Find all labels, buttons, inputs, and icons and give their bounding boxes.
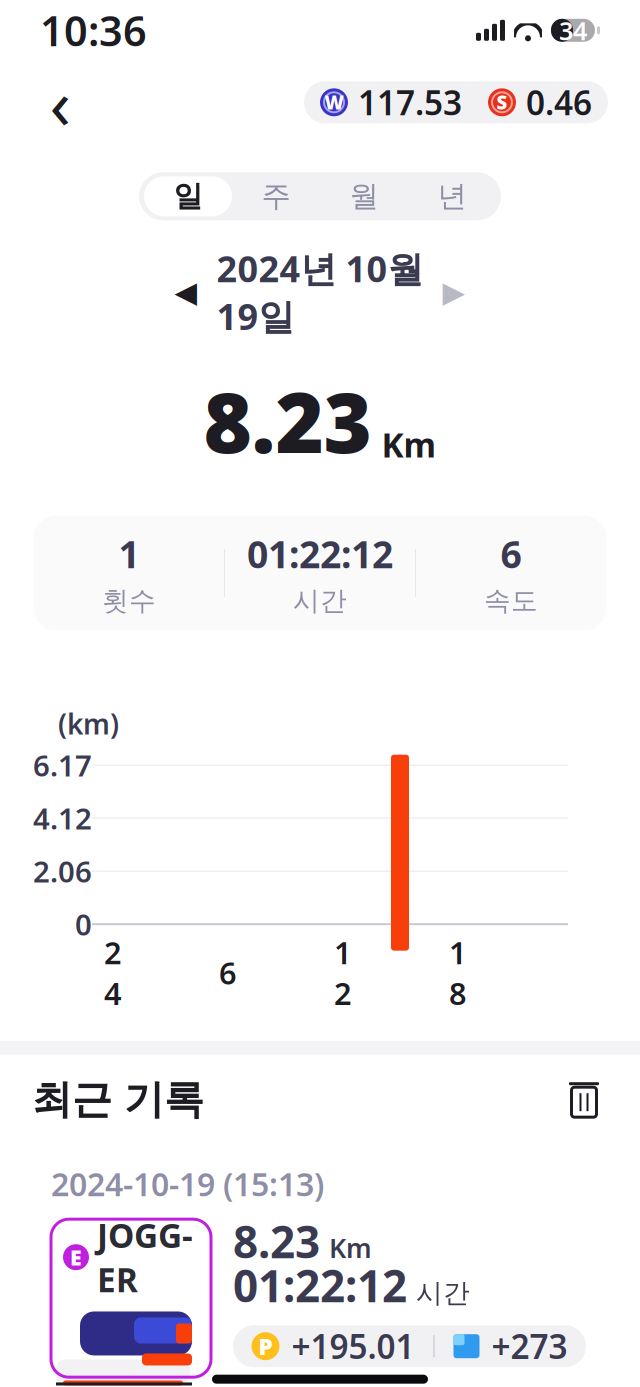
staticText: 117.53 [358, 80, 462, 124]
staticText: 34 [559, 13, 587, 47]
staticText: 8.23 [203, 366, 371, 476]
staticText: +195.01 [291, 1324, 414, 1368]
button[interactable]: 월 [320, 176, 408, 216]
button[interactable]: Previous day [164, 270, 208, 314]
staticText: P [258, 1331, 272, 1361]
staticText: 12 [334, 932, 352, 1013]
button[interactable]: 일 [144, 176, 232, 216]
staticText: 6 [219, 952, 237, 993]
staticText: 시간 [416, 1277, 470, 1309]
button[interactable]: W [304, 81, 608, 123]
button[interactable]: 2024-10-19 (15:13) [33, 1145, 607, 1375]
staticText: 2.06 [33, 852, 92, 891]
button[interactable]: Back [32, 74, 88, 130]
staticText: 일 [173, 178, 202, 214]
staticText: ◀ [174, 275, 197, 309]
staticText: 최근 기록 [32, 1075, 204, 1124]
staticText: 시간 [293, 585, 347, 617]
staticText: ▶ [442, 275, 465, 309]
staticText: 6 [500, 529, 521, 579]
staticText: JOGGER [97, 1213, 193, 1301]
staticText: 주 [261, 178, 290, 214]
staticText: 월 [349, 178, 378, 214]
button[interactable]: 년 [408, 176, 496, 216]
button[interactable]: 주 [232, 176, 320, 216]
staticText: 1 [118, 529, 139, 579]
staticText: 년 [437, 178, 466, 214]
staticText: 4.12 [33, 799, 92, 838]
staticText: 2024년 10월 19일 [216, 244, 423, 340]
staticText: 0.46 [526, 80, 592, 124]
staticText: 01:22:12 [247, 529, 393, 579]
staticText: 2024-10-19 (15:13) [51, 1163, 324, 1205]
button[interactable]: Next day [432, 270, 476, 314]
staticText: ‹ [49, 56, 70, 148]
staticText: S [496, 90, 507, 115]
staticText: E [70, 1243, 82, 1271]
staticText: 8.23 [233, 1212, 320, 1270]
staticText: 6.17 [33, 746, 92, 785]
staticText: 0 [75, 905, 92, 944]
staticText: 18 [449, 932, 467, 1013]
staticText: 10:36 [40, 3, 147, 58]
staticText: W [324, 90, 343, 115]
staticText: (km) [58, 705, 119, 742]
staticText: 24 [104, 932, 122, 1013]
staticText: 속도 [484, 585, 538, 617]
staticText: Km [329, 1230, 372, 1265]
staticText: 01:22:12 [233, 1256, 407, 1314]
button[interactable]: Delete records [560, 1076, 608, 1124]
staticText: Km [381, 422, 436, 467]
staticText: +273 [491, 1324, 567, 1368]
staticText: 횟수 [102, 585, 156, 617]
